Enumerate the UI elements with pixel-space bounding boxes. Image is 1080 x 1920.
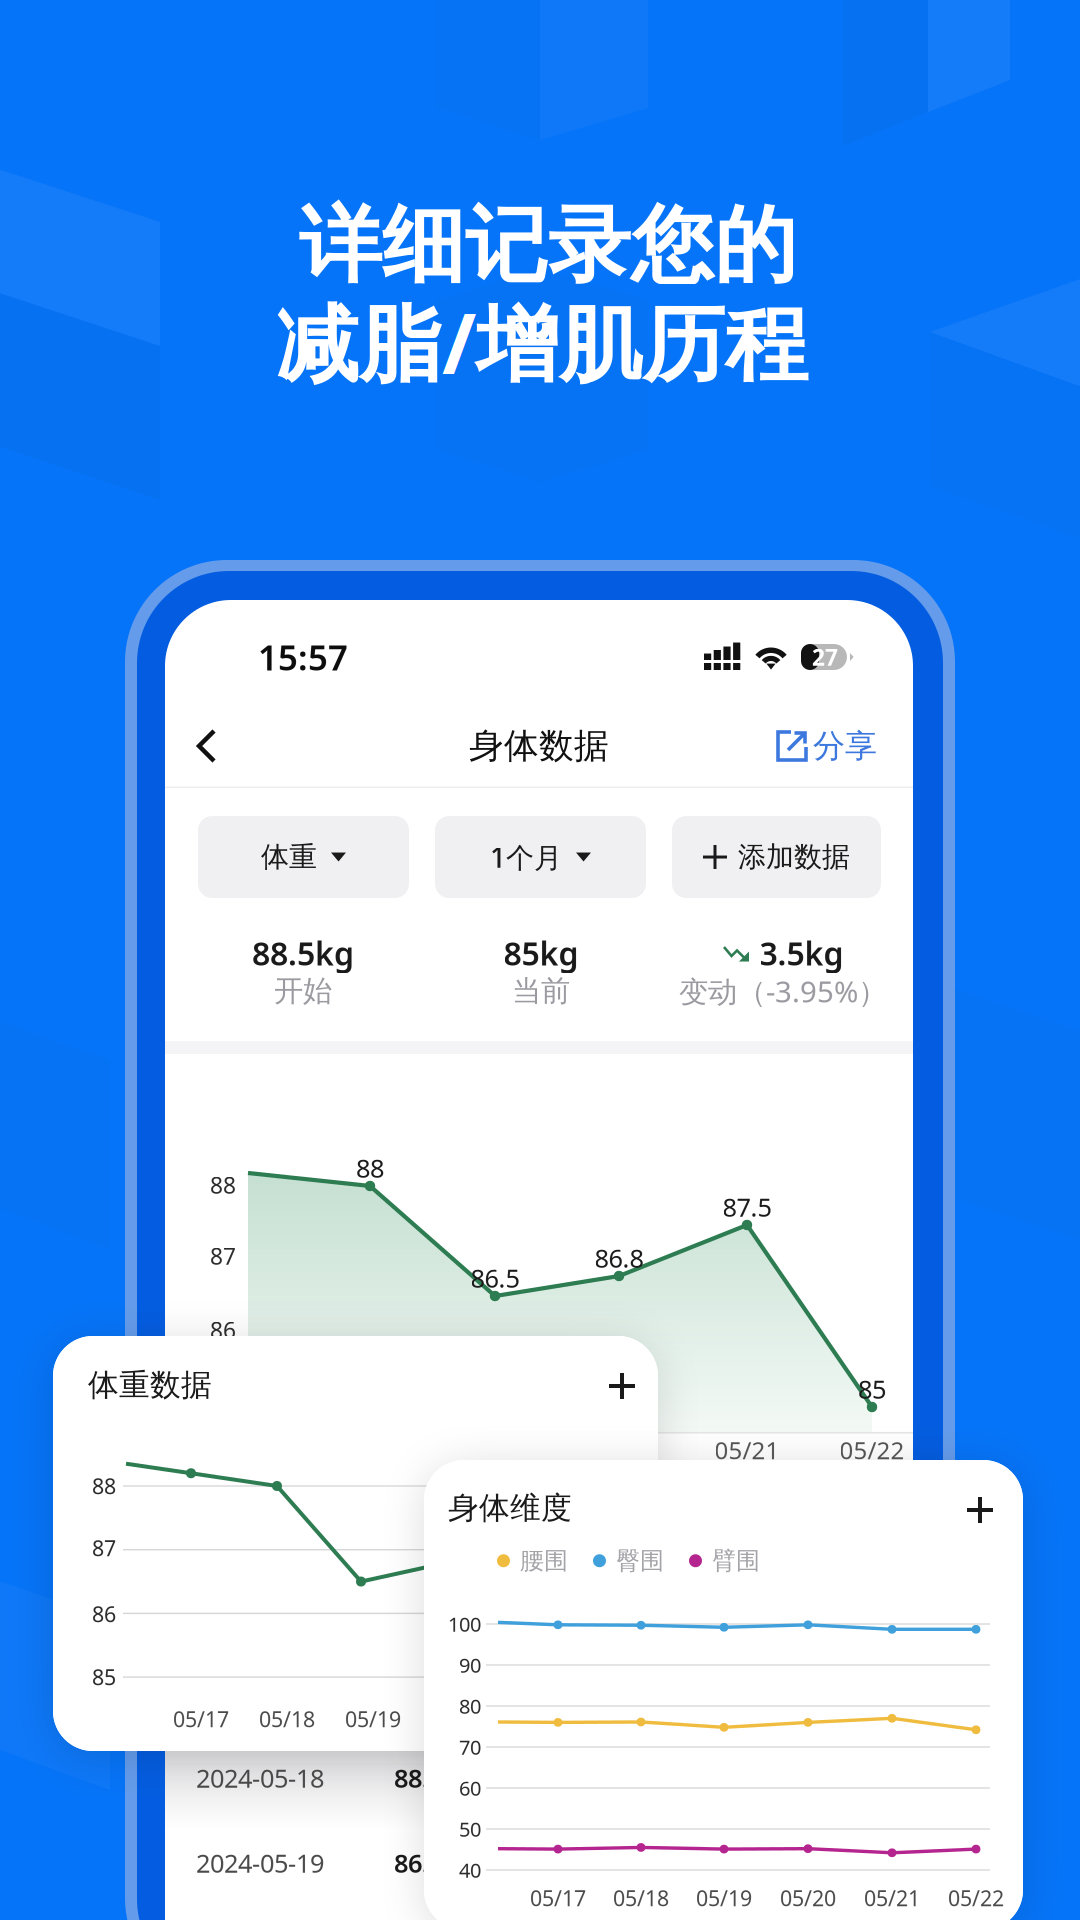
staticText: 身体数据: [469, 725, 609, 767]
staticText: 87: [210, 1241, 236, 1271]
staticText: 添加数据: [738, 840, 850, 874]
staticText: 身体维度: [448, 1489, 572, 1527]
staticText: 86.5: [470, 1261, 519, 1295]
staticText: 87.5: [722, 1190, 771, 1224]
staticText: 05/21: [864, 1884, 920, 1912]
staticText: 05/18: [613, 1884, 669, 1912]
staticText: 3.5kg: [759, 932, 843, 974]
button[interactable]: 体重: [198, 816, 409, 898]
staticText: 05/19: [345, 1705, 401, 1733]
staticText: 05/20: [780, 1884, 836, 1912]
staticText: 88.5kg: [394, 1761, 474, 1795]
staticText: 05/22: [948, 1884, 1004, 1912]
staticText: 86: [92, 1600, 116, 1628]
staticText: 0: [449, 1705, 461, 1733]
staticText: 40: [459, 1857, 481, 1883]
staticText: 15:57: [258, 634, 348, 680]
staticText: 变动（-3.95%）: [679, 971, 887, 1010]
staticText: 86.8: [594, 1241, 643, 1275]
staticText: 2024-05-19: [196, 1846, 324, 1880]
staticText: 87: [92, 1534, 116, 1562]
staticText: 85: [92, 1663, 116, 1691]
staticText: 2024-05-18: [196, 1761, 324, 1795]
staticText: 开始: [274, 973, 332, 1009]
button[interactable]: 分享: [775, 718, 877, 774]
staticText: 05/18: [259, 1705, 315, 1733]
staticText: 86: [210, 1315, 236, 1345]
staticText: 86.8kg: [394, 1846, 474, 1880]
staticText: 05/17: [530, 1884, 586, 1912]
staticText: 88.5kg: [252, 932, 354, 974]
staticText: 减脂/增肌历程: [276, 287, 808, 397]
staticText: 100: [448, 1611, 481, 1637]
staticText: 85kg: [503, 932, 578, 974]
staticText: 体重: [261, 840, 317, 874]
staticText: 臀围: [616, 1546, 664, 1575]
staticText: 88: [92, 1472, 116, 1500]
staticText: 88: [210, 1170, 236, 1200]
staticText: 臂围: [712, 1546, 760, 1575]
staticText: 05/17: [173, 1705, 229, 1733]
button[interactable]: 返回: [182, 718, 232, 774]
staticText: 当前: [512, 973, 570, 1009]
staticText: 27: [812, 642, 838, 672]
button[interactable]: 添加数据: [672, 816, 881, 898]
button[interactable]: 1个月: [435, 816, 646, 898]
staticText: 80: [459, 1693, 481, 1719]
staticText: 腰围: [520, 1546, 568, 1575]
button[interactable]: 添加身体维度: [953, 1483, 1007, 1537]
staticText: 体重数据: [88, 1366, 212, 1404]
staticText: 60: [459, 1775, 481, 1801]
staticText: 90: [459, 1652, 481, 1678]
staticText: 88: [356, 1151, 384, 1185]
staticText: 详细记录您的: [299, 195, 797, 296]
staticText: 50: [459, 1816, 481, 1842]
staticText: 05/22: [839, 1434, 904, 1466]
staticText: 05/21: [714, 1434, 779, 1466]
button[interactable]: 添加体重数据: [595, 1359, 649, 1413]
staticText: 70: [459, 1734, 481, 1760]
staticText: 85: [858, 1372, 886, 1406]
staticText: 分享: [813, 726, 877, 766]
staticText: 05/19: [696, 1884, 752, 1912]
staticText: 1个月: [490, 838, 562, 876]
